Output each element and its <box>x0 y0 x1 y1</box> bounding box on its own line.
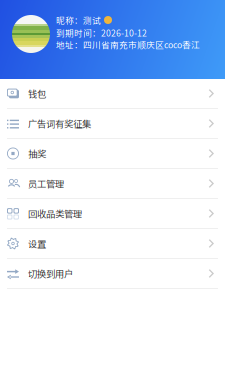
staticText: 回收品类管理 <box>28 207 82 220</box>
button[interactable]: 设置 <box>0 229 225 259</box>
button[interactable]: 钱包 <box>0 79 225 109</box>
button[interactable]: 抽奖 <box>0 139 225 169</box>
staticText: 广告词有奖征集 <box>28 117 91 130</box>
button[interactable]: 切换到用户 <box>0 259 225 289</box>
staticText: 钱包 <box>28 87 46 100</box>
staticText: 抽奖 <box>28 147 46 160</box>
staticText: 到期时间：2026-10-12 <box>56 27 147 38</box>
staticText: 地址：四川省南充市顺庆区coco香江 <box>56 39 200 50</box>
staticText: 切换到用户 <box>28 267 73 280</box>
button[interactable]: 广告词有奖征集 <box>0 109 225 139</box>
staticText: 员工管理 <box>28 177 64 190</box>
staticText: 设置 <box>28 237 46 250</box>
button[interactable]: 员工管理 <box>0 169 225 199</box>
staticText: 昵称：测试 <box>56 15 101 25</box>
button[interactable]: 回收品类管理 <box>0 199 225 229</box>
